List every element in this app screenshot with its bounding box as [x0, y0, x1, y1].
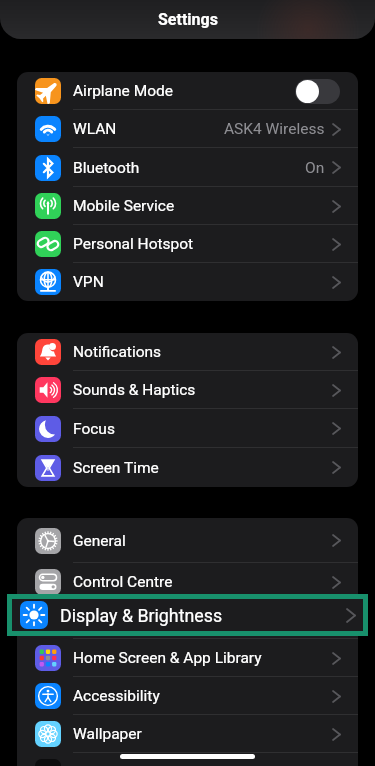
- button[interactable]: Bluetooth: [17, 148, 358, 187]
- staticText: Mobile Service: [73, 197, 175, 215]
- button[interactable]: Display & Brightness: [17, 601, 358, 639]
- staticText: VPN: [73, 273, 104, 291]
- staticText: WLAN: [73, 120, 117, 138]
- button[interactable]: General: [17, 518, 358, 563]
- button[interactable]: Mobile Service: [17, 187, 358, 225]
- staticText: Wallpaper: [73, 725, 142, 743]
- staticText: Control Centre: [73, 573, 173, 591]
- staticText: Home Screen & App Library: [73, 649, 262, 667]
- button[interactable]: Sounds & Haptics: [17, 371, 358, 409]
- staticText: General: [73, 532, 126, 550]
- button[interactable]: WLAN: [17, 110, 358, 148]
- button[interactable]: Control Centre: [17, 563, 358, 601]
- staticText: ASK4 Wireless: [224, 120, 325, 138]
- other: Airplane Mode toggle: [295, 79, 340, 104]
- button[interactable]: Display & Brightness: [12, 599, 363, 631]
- staticText: Focus: [73, 420, 115, 438]
- staticText: Personal Hotspot: [73, 235, 194, 253]
- staticText: Settings: [158, 10, 218, 29]
- staticText: Display & Brightness: [60, 605, 223, 626]
- staticText: Airplane Mode: [73, 82, 173, 100]
- button[interactable]: Notifications: [17, 333, 358, 371]
- staticText: Bluetooth: [73, 159, 140, 177]
- button[interactable]: Home Screen & App Library: [17, 639, 358, 677]
- button[interactable]: Wallpaper: [17, 715, 358, 753]
- staticText: On: [305, 159, 325, 177]
- staticText: Screen Time: [73, 459, 159, 477]
- button[interactable]: Airplane Mode: [17, 72, 358, 110]
- button[interactable]: Siri & Search: [17, 753, 358, 766]
- button[interactable]: Focus: [17, 409, 358, 448]
- staticText: Display & Brightness: [73, 611, 215, 629]
- staticText: Accessibility: [73, 687, 160, 705]
- staticText: Sounds & Haptics: [73, 381, 196, 399]
- button[interactable]: Screen Time: [17, 448, 358, 487]
- button[interactable]: Accessibility: [17, 677, 358, 715]
- staticText: Notifications: [73, 343, 162, 361]
- button[interactable]: VPN: [17, 263, 358, 301]
- button[interactable]: Personal Hotspot: [17, 225, 358, 263]
